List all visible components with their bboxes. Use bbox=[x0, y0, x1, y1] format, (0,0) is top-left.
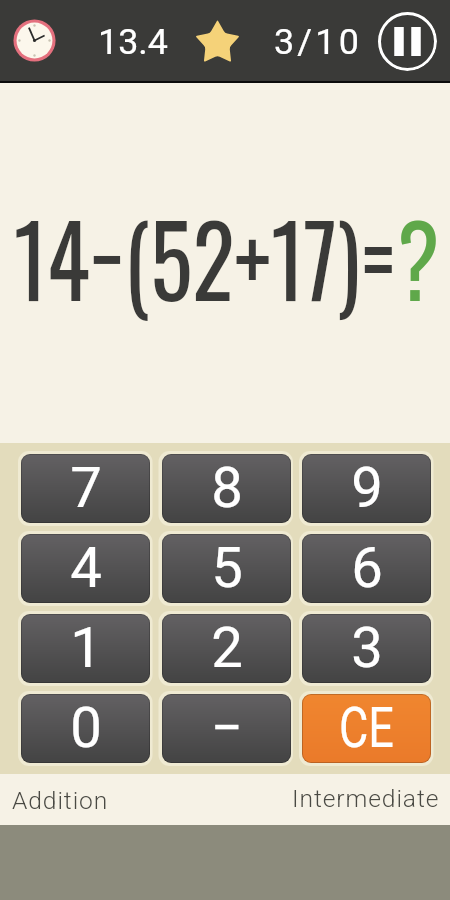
button[interactable]: Addition bbox=[12, 786, 109, 814]
button[interactable]: 8 bbox=[162, 454, 291, 523]
button[interactable]: CE bbox=[302, 694, 431, 763]
staticText: CE bbox=[339, 695, 394, 761]
staticText: 14−(52+17)=? bbox=[13, 183, 439, 329]
button[interactable]: 4 bbox=[21, 534, 150, 603]
staticText: Addition bbox=[12, 786, 109, 814]
button[interactable]: Timer bbox=[13, 19, 56, 62]
button[interactable]: 2 bbox=[162, 614, 291, 683]
staticText: 6 bbox=[351, 535, 383, 601]
button[interactable]: 6 bbox=[302, 534, 431, 603]
button[interactable]: Score bbox=[194, 19, 241, 66]
staticText: 3 bbox=[351, 615, 383, 681]
button[interactable]: Intermediate bbox=[292, 784, 440, 813]
button[interactable]: 1 bbox=[21, 614, 150, 683]
button[interactable]: 7 bbox=[21, 454, 150, 523]
button[interactable]: 3 bbox=[302, 614, 431, 683]
staticText: 3/10 bbox=[274, 21, 363, 63]
staticText: 0 bbox=[70, 695, 102, 761]
staticText: 1 bbox=[70, 615, 102, 681]
button[interactable]: − bbox=[162, 694, 291, 763]
staticText: 7 bbox=[70, 455, 102, 521]
staticText: − bbox=[210, 695, 243, 761]
staticText: Intermediate bbox=[292, 784, 440, 813]
button[interactable]: 0 bbox=[21, 694, 150, 763]
staticText: 9 bbox=[351, 455, 383, 521]
staticText: 8 bbox=[211, 455, 243, 521]
button[interactable]: 5 bbox=[162, 534, 291, 603]
staticText: 4 bbox=[70, 535, 102, 601]
staticText: 2 bbox=[211, 615, 243, 681]
staticText: 5 bbox=[211, 535, 243, 601]
button[interactable]: 9 bbox=[302, 454, 431, 523]
button[interactable]: Pause bbox=[377, 11, 437, 71]
staticText: 13.4 bbox=[98, 21, 168, 63]
